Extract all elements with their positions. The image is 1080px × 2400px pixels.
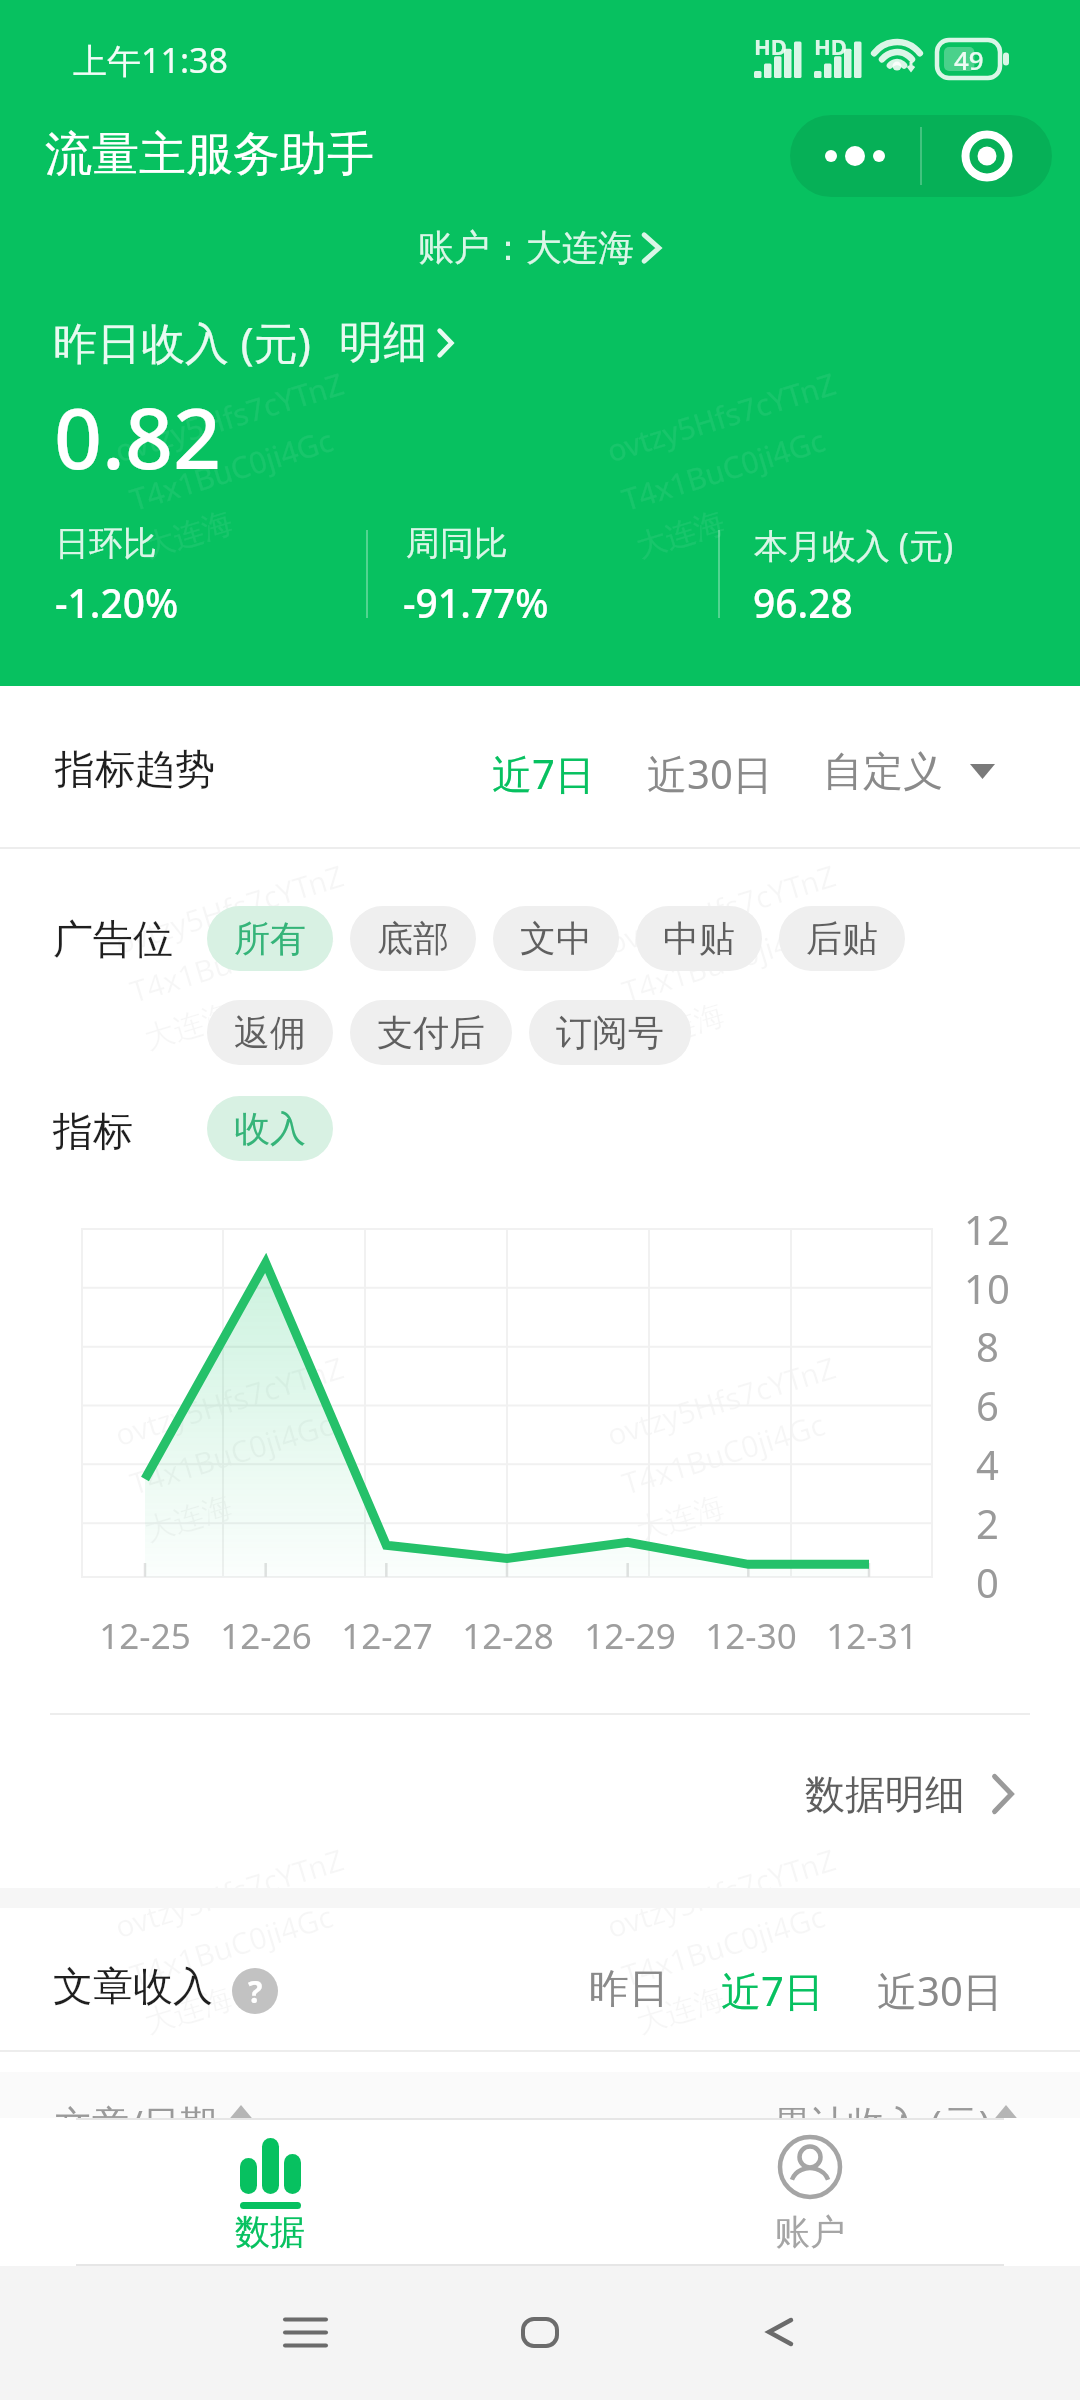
staticText: T4x1BuC0ji4Gc [125, 419, 338, 520]
staticText: 日环比 [55, 522, 157, 565]
staticText: 12-28 [462, 1612, 554, 1660]
staticText: 12-29 [584, 1612, 676, 1660]
button[interactable]: 文中 [493, 906, 619, 971]
staticText: 数据明细 [805, 1769, 965, 1819]
staticText: 近30日 [877, 1963, 1003, 2018]
staticText: 12-27 [341, 1612, 433, 1660]
staticText: 大连海 [140, 1487, 237, 1550]
staticText: ovtzy5Hfs7cYTnZ [110, 1839, 349, 1947]
staticText: T4x1BuC0ji4Gc [125, 1403, 338, 1504]
staticText: 流量主服务助手 [45, 125, 374, 184]
staticText: 8 [976, 1319, 999, 1373]
staticText: 文章/日期 [55, 2097, 217, 2148]
button[interactable]: Back [720, 2266, 840, 2398]
staticText: 本月收入 (元) [754, 522, 954, 568]
staticText: 底部 [377, 916, 449, 961]
staticText: ovtzy5Hfs7cYTnZ [602, 363, 841, 471]
button[interactable]: 支付后 [350, 1000, 512, 1065]
staticText: 2 [976, 1496, 999, 1550]
staticText: 12 [964, 1202, 1010, 1256]
button[interactable]: 近30日 [633, 734, 787, 813]
staticText: 0 [976, 1555, 999, 1609]
button[interactable]: 自定义 [809, 734, 1009, 808]
staticText: 大连海 [140, 1979, 237, 2042]
button[interactable]: 近7日 [707, 1951, 838, 2030]
staticText: ovtzy5Hfs7cYTnZ [110, 855, 349, 963]
staticText: 账户 [775, 2210, 845, 2254]
staticText: 12-31 [826, 1612, 918, 1660]
staticText: 12-30 [705, 1612, 797, 1660]
staticText: 累计收入 (元) [773, 2097, 990, 2148]
staticText: 昨日收入 (元) [53, 312, 311, 372]
staticText: 指标 [53, 1106, 133, 1156]
staticText: 账户：大连海 [418, 225, 634, 270]
staticText: 96.28 [753, 576, 853, 629]
staticText: 大连海 [632, 1487, 729, 1550]
button[interactable]: 订阅号 [529, 1000, 691, 1065]
staticText: T4x1BuC0ji4Gc [125, 1895, 338, 1996]
button[interactable]: 昨日 [575, 1951, 683, 2025]
staticText: ? [248, 1971, 263, 2012]
staticText: 支付后 [377, 1010, 485, 1055]
button[interactable]: Recent apps [245, 2266, 365, 2398]
staticText: HD [814, 31, 847, 61]
staticText: 文章收入 [53, 1961, 213, 2011]
staticText: 0.82 [54, 379, 221, 493]
button[interactable]: 后贴 [779, 906, 905, 971]
button[interactable]: 账户：大连海 [410, 219, 670, 276]
staticText: T4x1BuC0ji4Gc [617, 419, 830, 520]
button[interactable]: 收入 [207, 1096, 333, 1161]
staticText: 指标趋势 [55, 744, 215, 794]
button[interactable]: 明细 [339, 315, 454, 370]
staticText: ovtzy5Hfs7cYTnZ [110, 363, 349, 471]
staticText: 近7日 [721, 1963, 824, 2018]
button[interactable]: Close mini program [922, 115, 1052, 197]
staticText: 数据 [235, 2210, 305, 2254]
button[interactable]: 近7日 [478, 734, 609, 813]
staticText: 订阅号 [556, 1010, 664, 1055]
staticText: -1.20% [55, 576, 179, 629]
button[interactable]: Help [232, 1968, 278, 2014]
staticText: 大连海 [632, 1979, 729, 2042]
staticText: ovtzy5Hfs7cYTnZ [602, 1347, 841, 1455]
staticText: 明细 [339, 315, 427, 370]
staticText: ovtzy5Hfs7cYTnZ [602, 1839, 841, 1947]
button[interactable]: 近30日 [863, 1951, 1017, 2030]
button[interactable]: Home [480, 2266, 600, 2398]
staticText: 近7日 [492, 746, 595, 801]
staticText: 49 [954, 42, 984, 77]
staticText: -91.77% [403, 576, 549, 629]
staticText: T4x1BuC0ji4Gc [617, 1403, 830, 1504]
staticText: 后贴 [806, 916, 878, 961]
staticText: 12-26 [220, 1612, 312, 1660]
staticText: 10 [964, 1261, 1010, 1315]
staticText: 返佣 [234, 1010, 306, 1055]
staticText: 6 [976, 1378, 999, 1432]
staticText: 自定义 [823, 746, 943, 796]
button[interactable]: 数据 [150, 2120, 390, 2266]
staticText: 上午11:38 [73, 37, 228, 83]
staticText: T4x1BuC0ji4Gc [617, 911, 830, 1012]
button[interactable]: 账户 [690, 2120, 930, 2266]
button[interactable]: More options [790, 115, 920, 197]
staticText: 广告位 [53, 914, 173, 964]
staticText: 收入 [234, 1106, 306, 1151]
button[interactable]: 中贴 [636, 906, 762, 971]
staticText: 大连海 [632, 503, 729, 566]
staticText: 近30日 [647, 746, 773, 801]
staticText: 大连海 [140, 995, 237, 1058]
staticText: 大连海 [632, 995, 729, 1058]
button[interactable]: 数据明细 [795, 1759, 1025, 1829]
staticText: T4x1BuC0ji4Gc [125, 911, 338, 1012]
button[interactable]: 所有 [207, 906, 333, 971]
staticText: 大连海 [140, 503, 237, 566]
staticText: HD [754, 31, 787, 61]
staticText: 周同比 [406, 522, 508, 565]
button[interactable]: 底部 [350, 906, 476, 971]
staticText: ovtzy5Hfs7cYTnZ [602, 855, 841, 963]
staticText: 12-25 [99, 1612, 191, 1660]
button[interactable]: 返佣 [207, 1000, 333, 1065]
staticText: 文中 [520, 916, 592, 961]
staticText: 中贴 [663, 916, 735, 961]
staticText: 所有 [234, 916, 306, 961]
